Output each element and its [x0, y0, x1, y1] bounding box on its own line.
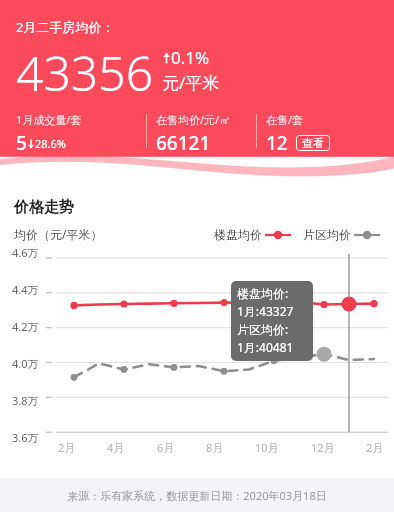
- staticText: 楼盘均价:: [237, 285, 289, 301]
- staticText: 查看: [302, 136, 324, 150]
- staticText: 8月: [206, 440, 224, 455]
- staticText: 6月: [157, 440, 175, 455]
- staticText: 在售均价/元/㎡: [156, 112, 231, 127]
- staticText: 43356: [16, 40, 154, 105]
- staticText: 12月: [311, 440, 335, 455]
- staticText: 4.2万: [12, 319, 39, 334]
- staticText: 元/平米: [162, 71, 220, 94]
- staticText: 2月二手房均价：: [16, 18, 115, 36]
- staticText: 楼盘均价: [214, 227, 262, 242]
- staticText: 0.1%: [171, 46, 210, 69]
- staticText: 均价（元/平米）: [14, 226, 103, 242]
- staticText: 来源：乐有家系统，数据更新日期：2020年03月18日: [67, 488, 327, 503]
- button[interactable]: 片区均价: [303, 227, 380, 242]
- staticText: 4.4万: [12, 282, 39, 297]
- staticText: 4.6万: [12, 245, 39, 260]
- button[interactable]: 楼盘均价: [214, 227, 291, 242]
- button[interactable]: 楼盘均价:: [231, 281, 313, 361]
- staticText: 10月: [255, 440, 279, 455]
- staticText: 价格走势: [14, 198, 74, 217]
- staticText: 2月: [58, 440, 76, 455]
- staticText: 片区均价: [303, 227, 351, 242]
- staticText: 5: [16, 130, 27, 156]
- staticText: 12: [266, 130, 288, 156]
- staticText: 1月:43327: [237, 303, 294, 319]
- staticText: 1月:40481: [237, 339, 294, 355]
- staticText: 片区均价:: [237, 321, 289, 337]
- staticText: 2月: [366, 440, 384, 455]
- staticText: 1月成交量/套: [16, 112, 82, 127]
- staticText: 28.6%: [35, 136, 66, 151]
- staticText: 3.8万: [12, 393, 39, 408]
- staticText: 66121: [156, 130, 211, 156]
- staticText: 3.6万: [12, 430, 39, 445]
- staticText: 4.0万: [12, 356, 39, 371]
- staticText: 在售/套: [266, 112, 304, 127]
- staticText: 4月: [107, 440, 125, 455]
- button[interactable]: 查看: [296, 135, 330, 151]
